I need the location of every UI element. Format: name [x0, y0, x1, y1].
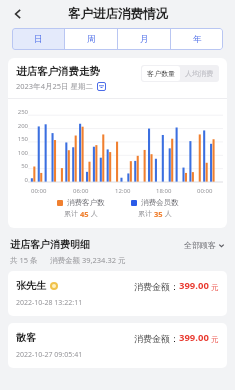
staticText: 12:00	[115, 187, 131, 195]
staticText: 客户数量	[147, 69, 175, 78]
staticText: 共 15 条	[10, 255, 38, 265]
staticText: 消费会员数	[141, 198, 179, 207]
staticText: 客户进店消费情况	[68, 6, 168, 22]
staticText: 35	[154, 209, 163, 219]
staticText: 150	[10, 135, 28, 143]
button[interactable]: 年	[171, 28, 223, 50]
staticText: 100	[10, 149, 28, 157]
staticText: 人	[163, 209, 172, 219]
button[interactable]: Back	[6, 2, 30, 26]
button[interactable]: 全部顾客	[184, 240, 225, 250]
staticText: 消费金额：	[134, 281, 179, 292]
staticText: 06:00	[73, 187, 89, 195]
staticText: 元	[209, 334, 219, 344]
staticText: 元	[209, 282, 219, 292]
staticText: 50	[10, 162, 28, 170]
staticText: 日	[34, 34, 43, 45]
staticText: 累计	[64, 209, 80, 219]
staticText: 人	[89, 209, 98, 219]
button[interactable]: 人均消费	[185, 69, 213, 78]
staticText: 2022-10-28 13:22:11	[16, 298, 83, 308]
staticText: 2022-10-27 09:05:41	[16, 350, 83, 360]
staticText: 2023年4月25日 星期二	[16, 81, 93, 91]
staticText: 进店客户消费走势	[16, 65, 100, 78]
button[interactable]: Pick date	[97, 82, 106, 91]
staticText: 张先生	[16, 279, 46, 292]
staticText: 45	[80, 209, 89, 219]
staticText: 200	[10, 122, 28, 130]
button[interactable]: 张先生	[8, 271, 227, 316]
staticText: 消费金额：	[134, 333, 179, 344]
button[interactable]: 散客	[8, 323, 227, 368]
staticText: 月	[140, 34, 149, 45]
staticText: 年	[193, 34, 202, 45]
staticText: 全部顾客	[184, 240, 216, 250]
staticText: 00:00	[31, 187, 47, 195]
button[interactable]: 客户数量	[147, 69, 175, 78]
staticText: 00:00	[197, 187, 213, 195]
staticText: 18:00	[156, 187, 172, 195]
staticText: 0	[10, 176, 28, 184]
staticText: 人均消费	[185, 69, 213, 78]
staticText: 累计	[138, 209, 154, 219]
staticText: 消费客户数	[67, 198, 105, 207]
staticText: 进店客户消费明细	[10, 238, 184, 251]
staticText: 399.00	[179, 279, 209, 292]
button[interactable]: 日	[12, 28, 64, 50]
staticText: 399.00	[179, 331, 209, 344]
button[interactable]: 周	[65, 28, 117, 50]
staticText: 散客	[16, 331, 36, 344]
button[interactable]: 月	[118, 28, 170, 50]
staticText: 周	[87, 34, 96, 45]
staticText: 消费金额 39,234.32 元	[50, 255, 126, 265]
staticText: 250	[10, 108, 28, 116]
